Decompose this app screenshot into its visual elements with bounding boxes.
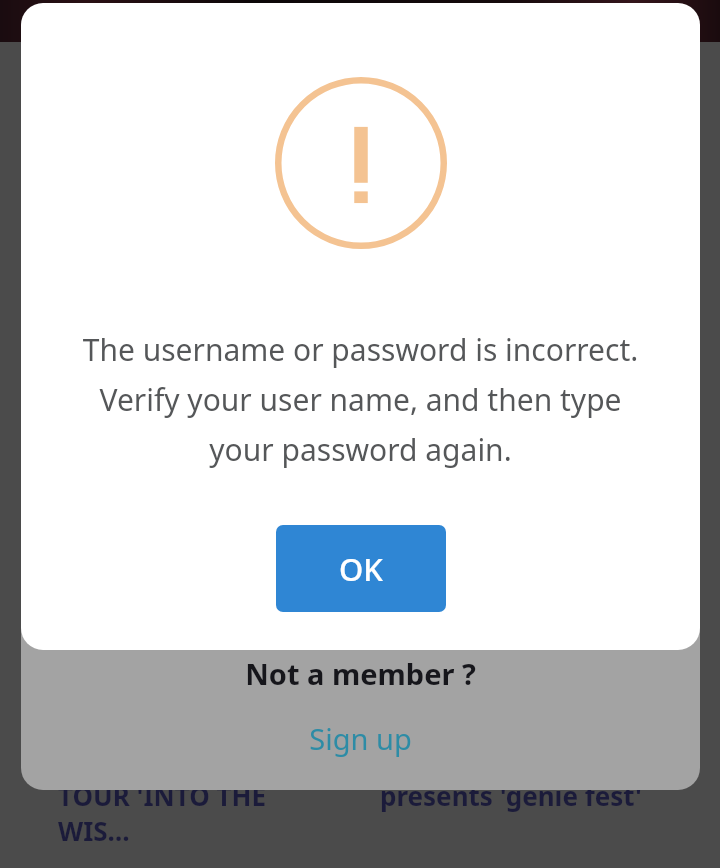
staticText: presents 'genie fest'	[380, 778, 662, 813]
staticText: The username or password is incorrect. V…	[69, 329, 652, 470]
staticText: Not a member ?	[245, 654, 476, 693]
staticText: TOUR 'INTO THE WIS…	[58, 778, 340, 848]
staticText: OK	[339, 548, 383, 590]
button[interactable]: OK	[276, 525, 446, 612]
button[interactable]: Sign up	[295, 715, 426, 762]
staticText: Sign up	[309, 719, 412, 758]
other: Warning	[275, 77, 447, 249]
